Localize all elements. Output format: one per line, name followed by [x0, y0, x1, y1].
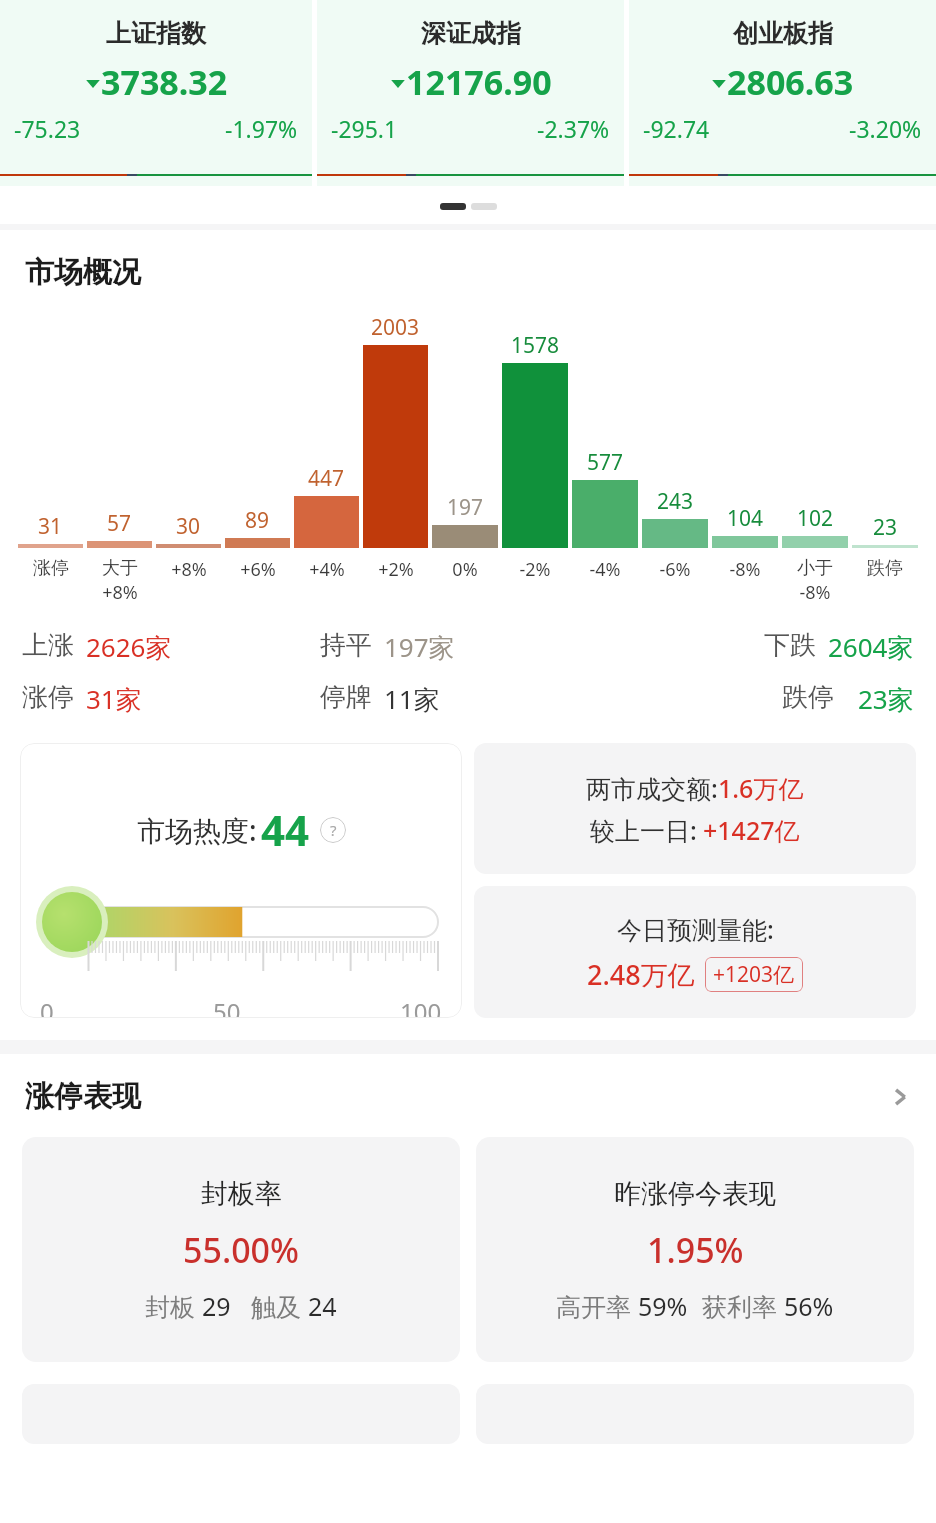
staticText: 50 — [213, 995, 241, 1018]
staticText: 197 — [447, 493, 484, 522]
staticText: 市场概况 — [25, 254, 141, 291]
staticText: -2.37% — [537, 113, 610, 144]
staticText: 29 — [202, 1289, 231, 1323]
staticText: 31 — [38, 512, 63, 541]
staticText: 44 — [261, 801, 310, 858]
staticText: 56% — [784, 1289, 834, 1323]
staticText: 102 — [797, 504, 834, 533]
staticText: +6% — [240, 557, 276, 582]
staticText: 今日预测量能: — [617, 912, 774, 946]
staticText: 上涨 — [22, 629, 74, 662]
staticText: 涨停 — [33, 557, 69, 580]
staticText: 创业板指 — [733, 18, 833, 49]
staticText: 104 — [727, 504, 764, 533]
staticText: 2604家 — [828, 629, 914, 665]
staticText: 封板率 — [201, 1177, 282, 1211]
staticText: 30 — [176, 512, 201, 541]
staticText: 55.00% — [183, 1227, 300, 1273]
button[interactable]: 创业板指 — [629, 0, 936, 186]
staticText: 0 — [40, 995, 54, 1018]
staticText: 31家 — [86, 681, 142, 717]
staticText: 1578 — [511, 331, 560, 360]
staticText: 触及 — [251, 1289, 308, 1323]
staticText: +2% — [378, 557, 414, 582]
staticText: 89 — [245, 506, 270, 535]
staticText: ? — [330, 820, 337, 840]
staticText: -3.20% — [849, 113, 922, 144]
staticText: -75.23 — [14, 113, 81, 144]
staticText: 2806.63 — [727, 59, 854, 105]
staticText: 获利率 — [702, 1289, 784, 1323]
staticText: 24 — [308, 1289, 337, 1323]
staticText: 2.48万亿 — [587, 956, 695, 993]
staticText: 市场热度: — [137, 811, 257, 849]
staticText: -1.97% — [225, 113, 298, 144]
staticText: 23家 — [858, 681, 914, 717]
staticText: 100 — [400, 995, 442, 1018]
staticText: 下跌 — [764, 629, 816, 662]
button[interactable]: 深证成指 — [317, 0, 624, 186]
staticText: 停牌 — [320, 681, 372, 714]
staticText: 447 — [308, 464, 345, 493]
staticText: 0% — [452, 557, 478, 582]
staticText: +8% — [171, 557, 207, 582]
staticText: 涨停 — [22, 681, 74, 714]
staticText: 小于 — [797, 557, 833, 580]
staticText: 高开率 — [556, 1289, 638, 1323]
button[interactable]: 说明 — [320, 817, 346, 843]
staticText: 1.6万亿 — [718, 771, 804, 805]
staticText: 577 — [587, 448, 624, 477]
staticText: -6% — [659, 557, 691, 582]
staticText: 较上一日: — [590, 813, 697, 847]
staticText: +8% — [102, 580, 138, 605]
staticText: 1.95% — [647, 1227, 744, 1273]
button[interactable]: 涨停表现 — [25, 1078, 911, 1115]
staticText: 上证指数 — [106, 18, 206, 49]
staticText: -4% — [589, 557, 621, 582]
button[interactable]: 昨涨停今表现 — [476, 1137, 914, 1362]
staticText: 涨停表现 — [25, 1078, 889, 1115]
staticText: 2626家 — [86, 629, 172, 665]
staticText: 2003 — [371, 313, 420, 342]
staticText: 昨涨停今表现 — [614, 1177, 776, 1211]
staticText: 跌停 — [867, 557, 903, 580]
staticText: -92.74 — [643, 113, 710, 144]
staticText: 197家 — [384, 629, 455, 665]
staticText: 59% — [638, 1289, 688, 1323]
staticText: 持平 — [320, 629, 372, 662]
staticText: 大于 — [102, 557, 138, 580]
button[interactable]: 市场热度: — [20, 743, 462, 1018]
staticText: 跌停 — [782, 681, 834, 714]
other: 更多 — [889, 1086, 911, 1108]
staticText: -295.1 — [331, 113, 398, 144]
button[interactable]: 上证指数 — [0, 0, 312, 186]
staticText: 12176.90 — [406, 59, 552, 105]
staticText: 两市成交额: — [586, 771, 718, 805]
staticText: -8% — [799, 580, 831, 605]
staticText: 封板 — [145, 1289, 202, 1323]
staticText: +4% — [309, 557, 345, 582]
staticText: 243 — [657, 487, 694, 516]
staticText: +1427亿 — [703, 813, 800, 847]
staticText: 深证成指 — [421, 18, 521, 49]
staticText: -2% — [519, 557, 551, 582]
staticText: 57 — [107, 509, 132, 538]
staticText: 3738.32 — [101, 59, 228, 105]
staticText: -8% — [729, 557, 761, 582]
button[interactable]: 今日预测量能: — [474, 886, 916, 1018]
staticText: 23 — [873, 513, 898, 542]
button[interactable]: 两市成交额: — [474, 743, 916, 874]
button[interactable]: 封板率 — [22, 1137, 460, 1362]
staticText: +1203亿 — [713, 960, 795, 989]
staticText: 11家 — [384, 681, 440, 717]
